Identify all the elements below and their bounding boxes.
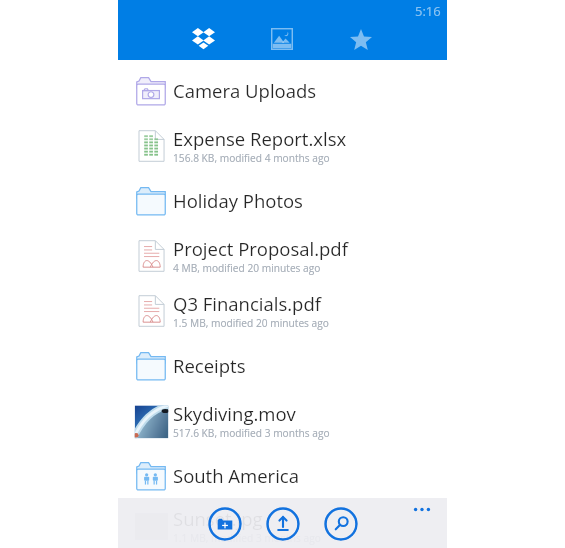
staticText: 1.5 MB, modified 20 minutes ago	[173, 316, 329, 330]
staticText: Project Proposal.pdf	[173, 236, 348, 261]
staticText: Q3 Financials.pdf	[173, 291, 321, 316]
button[interactable]: Receipts	[118, 338, 447, 393]
staticText: Holiday Photos	[173, 188, 303, 213]
button[interactable]: Files	[183, 19, 223, 59]
staticText: 5:16	[415, 2, 441, 20]
staticText: Receipts	[173, 353, 246, 378]
button[interactable]: New folder	[207, 506, 242, 541]
staticText: 517.6 KB, modified 3 months ago	[173, 426, 330, 440]
staticText: Camera Uploads	[173, 78, 317, 103]
button[interactable]: South America	[118, 448, 447, 503]
button[interactable]: Project Proposal.pdf	[118, 228, 447, 283]
button[interactable]: Upload	[265, 506, 300, 541]
staticText: 1.1 MB, modified 3 months ago	[173, 531, 321, 545]
button[interactable]: Q3 Financials.pdf	[118, 283, 447, 338]
button[interactable]: Photos	[262, 19, 302, 59]
button[interactable]: Sunset.jpg	[118, 503, 447, 548]
staticText: Sunset.jpg	[173, 506, 263, 531]
button[interactable]: Camera Uploads	[118, 63, 447, 118]
button[interactable]: Search	[323, 506, 358, 541]
button[interactable]: Favorites	[341, 19, 381, 59]
button[interactable]: Holiday Photos	[118, 173, 447, 228]
staticText: 156.8 KB, modified 4 months ago	[173, 151, 330, 165]
button[interactable]: Skydiving.mov	[118, 393, 447, 448]
button[interactable]: Expense Report.xlsx	[118, 118, 447, 173]
staticText: South America	[173, 463, 299, 488]
staticText: 4 MB, modified 20 minutes ago	[173, 261, 321, 275]
staticText: Skydiving.mov	[173, 401, 296, 426]
staticText: Expense Report.xlsx	[173, 126, 347, 151]
button[interactable]: More options	[404, 494, 440, 524]
